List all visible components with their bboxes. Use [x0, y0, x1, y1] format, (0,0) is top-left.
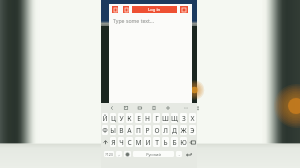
staticText: Ю [180, 138, 187, 147]
staticText: , [118, 151, 120, 157]
button[interactable]: У [118, 113, 124, 123]
button[interactable]: Camera [123, 6, 129, 13]
staticText: Е [137, 114, 141, 123]
button[interactable]: Я [110, 137, 116, 147]
staticText: Б [172, 138, 177, 147]
button[interactable]: ?123 [104, 151, 114, 157]
staticText: Л [163, 126, 168, 135]
staticText: Ш [162, 114, 169, 123]
staticText: Т [155, 138, 159, 147]
button[interactable]: Т [153, 137, 160, 147]
button[interactable]: Ц [110, 113, 116, 123]
staticText: Ь [163, 138, 168, 147]
button[interactable]: Щ [171, 113, 178, 123]
staticText: Р [145, 126, 150, 135]
staticText: . [178, 151, 180, 157]
button[interactable]: Clipboard [150, 103, 158, 112]
button[interactable]: Л [162, 125, 169, 135]
button[interactable]: П [135, 125, 142, 135]
button[interactable]: К [126, 113, 133, 123]
button[interactable]: А [126, 125, 133, 135]
staticText: П [136, 126, 141, 135]
staticText: ?123 [105, 152, 113, 157]
button[interactable]: Н [144, 113, 151, 123]
staticText: З [182, 114, 186, 123]
button[interactable]: More options [182, 103, 190, 112]
staticText: Ж [180, 126, 187, 135]
button[interactable]: Change language [124, 151, 131, 157]
button[interactable]: Ь [162, 137, 169, 147]
staticText: В [119, 126, 124, 135]
staticText: Щ [171, 114, 178, 123]
button[interactable]: Ю [180, 137, 187, 147]
staticText: Я [111, 138, 116, 147]
staticText: Э [190, 126, 195, 135]
button[interactable]: Ы [110, 125, 116, 135]
staticText: Ф [102, 126, 108, 135]
button[interactable]: Русский [133, 151, 174, 157]
button[interactable]: Enter [184, 151, 194, 157]
staticText: Н [145, 114, 150, 123]
staticText: Й [102, 114, 108, 123]
button[interactable]: М [135, 137, 142, 147]
button[interactable]: . [176, 151, 182, 157]
button[interactable]: И [144, 137, 151, 147]
staticText: Ч [119, 138, 124, 147]
staticText: Д [172, 126, 177, 135]
button[interactable]: З [180, 113, 187, 123]
staticText: Ц [111, 114, 116, 123]
button[interactable]: Send [180, 6, 188, 13]
staticText: Г [155, 114, 159, 123]
staticText: И [145, 138, 151, 147]
staticText: Русский [146, 152, 161, 157]
staticText: О [154, 126, 160, 135]
staticText: А [127, 126, 132, 135]
button[interactable]: С [126, 137, 133, 147]
staticText: С [127, 138, 132, 147]
staticText: Ы [110, 126, 116, 135]
button[interactable]: Log in [132, 6, 177, 13]
button[interactable]: Д [171, 125, 178, 135]
button[interactable]: Ж [180, 125, 187, 135]
button[interactable]: Ш [162, 113, 169, 123]
button[interactable]: Backspace [188, 136, 197, 148]
button[interactable]: GIF [136, 103, 144, 112]
button[interactable]: Ф [102, 125, 108, 135]
button[interactable]: Е [135, 113, 142, 123]
staticText: М [135, 138, 142, 147]
button[interactable]: Г [153, 113, 160, 123]
staticText: Log in [148, 7, 161, 13]
button[interactable]: О [153, 125, 160, 135]
button[interactable]: В [118, 125, 124, 135]
button[interactable]: Attach [112, 6, 118, 13]
button[interactable]: Р [144, 125, 151, 135]
staticText: К [127, 114, 132, 123]
button[interactable]: Settings [164, 103, 172, 112]
button[interactable]: Back [108, 103, 116, 112]
button[interactable]: Й [102, 113, 108, 123]
button[interactable]: Э [189, 125, 196, 135]
button[interactable]: Stickers [122, 103, 130, 112]
button[interactable]: Б [171, 137, 178, 147]
button[interactable]: Ч [118, 137, 124, 147]
staticText: У [119, 114, 124, 123]
staticText: Х [190, 114, 195, 123]
staticText: Type some text... [113, 17, 155, 24]
button[interactable]: , [116, 151, 122, 157]
button[interactable]: Shift [101, 136, 109, 148]
button[interactable]: Х [189, 113, 196, 123]
